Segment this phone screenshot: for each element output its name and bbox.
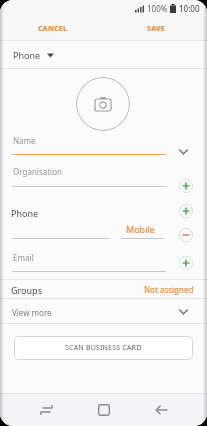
staticText: Name xyxy=(13,135,36,146)
button[interactable]: SCAN BUSINESS CARD xyxy=(14,336,193,360)
staticText: Not assigned xyxy=(144,284,194,295)
staticText: SCAN BUSINESS CARD xyxy=(65,343,142,353)
staticText: Phone xyxy=(11,207,39,219)
button[interactable] xyxy=(179,256,193,270)
button[interactable]: SAVE xyxy=(147,24,166,34)
button[interactable] xyxy=(30,393,63,426)
staticText: Organisation xyxy=(13,166,62,177)
button[interactable] xyxy=(87,393,120,426)
staticText: Mobile xyxy=(126,223,155,235)
button[interactable] xyxy=(179,179,193,193)
button[interactable]: Organisation xyxy=(0,163,207,191)
button[interactable]: CANCEL xyxy=(38,24,68,34)
staticText: Email xyxy=(13,252,34,263)
staticText: 10:00 xyxy=(179,3,200,14)
button[interactable]: Groups xyxy=(0,280,207,298)
staticText: SAVE xyxy=(147,24,166,34)
button[interactable]: Name xyxy=(0,132,207,159)
button[interactable]: Phone xyxy=(0,41,207,68)
staticText: CANCEL xyxy=(38,24,68,34)
staticText: Groups xyxy=(11,284,42,296)
button[interactable]: Email xyxy=(0,249,207,277)
staticText: 100% xyxy=(147,3,168,14)
staticText: Phone xyxy=(13,49,41,61)
button[interactable] xyxy=(145,393,178,426)
button[interactable] xyxy=(179,228,193,242)
staticText: View more xyxy=(12,307,52,318)
button[interactable] xyxy=(179,204,193,218)
button[interactable]: Mobile xyxy=(126,223,155,235)
button[interactable]: View more xyxy=(0,299,207,323)
button[interactable] xyxy=(76,77,130,131)
